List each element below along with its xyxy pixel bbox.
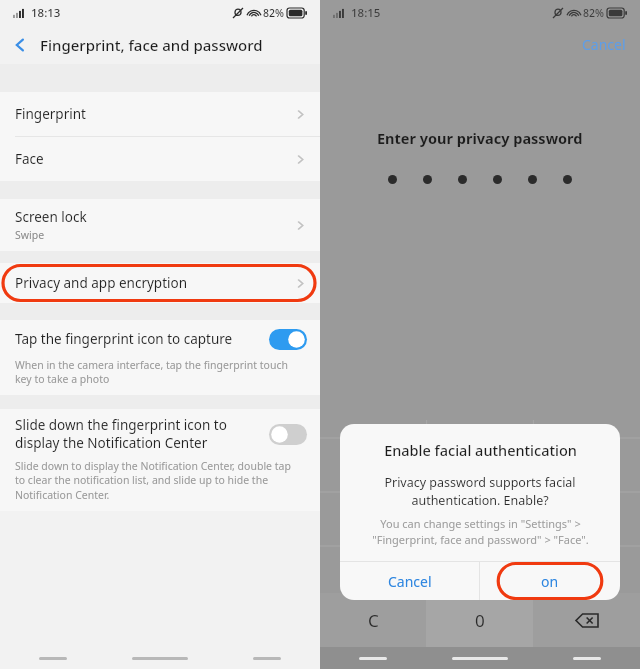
staticText: Cancel	[582, 35, 626, 54]
staticText: Screen lock	[15, 208, 87, 226]
staticText: Privacy password supports facial authent…	[384, 474, 576, 508]
staticText: Face	[15, 150, 44, 168]
staticText: 18:13	[31, 5, 61, 21]
button[interactable]: Fingerprint	[0, 92, 320, 136]
staticText: Slide down to display the Notification C…	[15, 459, 291, 502]
staticText: 82%	[583, 6, 604, 20]
staticText: Enter your privacy password	[377, 128, 583, 148]
staticText: on	[541, 572, 559, 591]
staticText: Slide down the fingerprint icon to displ…	[15, 416, 227, 452]
button[interactable]: Privacy and app encryption	[0, 263, 320, 303]
staticText: Cancel	[388, 572, 432, 591]
staticText: You can change settings in "Settings" > …	[372, 516, 589, 547]
staticText: Enable facial authentication	[384, 440, 577, 460]
button[interactable]: Screen lock	[0, 199, 320, 251]
staticText: Fingerprint, face and password	[40, 35, 263, 55]
button[interactable]: 0	[426, 593, 533, 647]
staticText: Privacy and app encryption	[15, 274, 188, 292]
staticText: Swipe	[15, 228, 45, 242]
button[interactable]: Cancel	[340, 562, 479, 600]
staticText: C	[368, 609, 379, 632]
staticText: 0	[475, 609, 485, 632]
staticText: When in the camera interface, tap the fi…	[15, 358, 288, 386]
button[interactable]: Tap the fingerprint icon to capture	[0, 320, 320, 358]
staticText: 18:15	[351, 5, 381, 21]
button[interactable]: Backspace	[533, 593, 640, 647]
staticText: Tap the fingerprint icon to capture	[15, 330, 233, 348]
button[interactable]: C	[320, 593, 426, 647]
button[interactable]: on	[480, 562, 620, 600]
button[interactable]: Face	[0, 137, 320, 181]
button[interactable]: Slide down the fingerprint icon to displ…	[0, 409, 320, 459]
staticText: 82%	[263, 6, 284, 20]
button[interactable]: Cancel	[568, 31, 640, 58]
button[interactable]: Back	[0, 26, 40, 64]
staticText: Fingerprint	[15, 105, 86, 123]
